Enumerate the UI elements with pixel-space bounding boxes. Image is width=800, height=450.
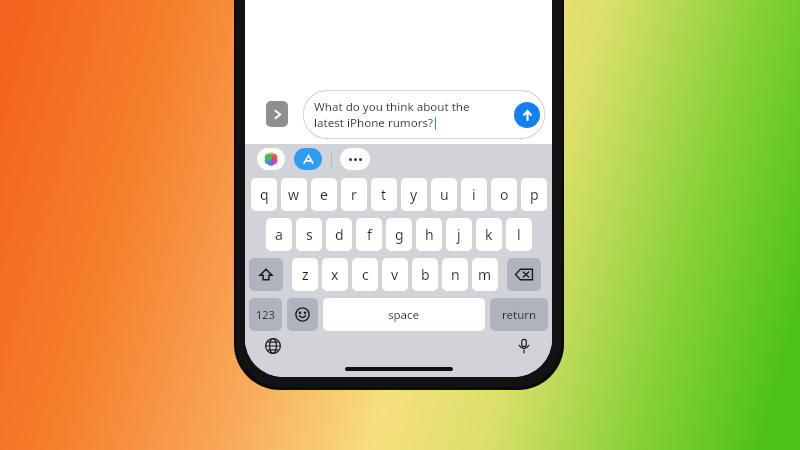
- button[interactable]: l: [506, 218, 532, 251]
- staticText: m: [478, 265, 492, 284]
- button[interactable]: e: [311, 178, 337, 211]
- button[interactable]: k: [476, 218, 502, 251]
- button[interactable]: i: [461, 178, 487, 211]
- button[interactable]: 123: [249, 298, 282, 331]
- staticText: c: [362, 265, 369, 284]
- button[interactable]: n: [442, 258, 468, 291]
- button[interactable]: r: [341, 178, 367, 211]
- button[interactable]: h: [416, 218, 442, 251]
- button[interactable]: f: [356, 218, 382, 251]
- button[interactable]: Shift: [249, 258, 283, 291]
- staticText: space: [388, 307, 420, 323]
- staticText: l: [517, 225, 521, 244]
- button[interactable]: t: [371, 178, 397, 211]
- button[interactable]: Change keyboard: [261, 334, 285, 358]
- staticText: k: [485, 225, 493, 244]
- button[interactable]: Dictate: [512, 334, 536, 358]
- button[interactable]: g: [386, 218, 412, 251]
- staticText: d: [335, 225, 344, 244]
- button[interactable]: a: [266, 218, 292, 251]
- button[interactable]: c: [352, 258, 378, 291]
- staticText: w: [288, 185, 300, 204]
- button[interactable]: y: [401, 178, 427, 211]
- button[interactable]: Delete: [507, 258, 541, 291]
- button[interactable]: s: [296, 218, 322, 251]
- staticText: y: [410, 185, 418, 204]
- staticText: latest iPhone rumors?: [314, 115, 434, 131]
- button[interactable]: App Store: [294, 148, 322, 170]
- button[interactable]: z: [292, 258, 318, 291]
- button[interactable]: d: [326, 218, 352, 251]
- staticText: u: [440, 185, 449, 204]
- button[interactable]: b: [412, 258, 438, 291]
- staticText: i: [472, 185, 476, 204]
- button[interactable]: x: [322, 258, 348, 291]
- staticText: 123: [256, 307, 275, 322]
- button[interactable]: Photos: [257, 148, 285, 170]
- staticText: What do you think about the: [314, 99, 470, 115]
- button[interactable]: j: [446, 218, 472, 251]
- staticText: o: [500, 185, 509, 204]
- staticText: t: [381, 185, 387, 204]
- staticText: h: [425, 225, 434, 244]
- staticText: return: [502, 307, 537, 323]
- button[interactable]: Expand apps: [266, 101, 288, 127]
- staticText: s: [306, 225, 313, 244]
- staticText: z: [302, 265, 309, 284]
- button[interactable]: u: [431, 178, 457, 211]
- button[interactable]: o: [491, 178, 517, 211]
- staticText: f: [367, 225, 372, 244]
- button[interactable]: What do you think about the: [303, 90, 545, 139]
- staticText: r: [351, 185, 357, 204]
- staticText: p: [530, 185, 539, 204]
- staticText: v: [391, 265, 399, 284]
- button[interactable]: q: [251, 178, 277, 211]
- staticText: x: [331, 265, 339, 284]
- staticText: j: [457, 225, 461, 244]
- button[interactable]: w: [281, 178, 307, 211]
- button[interactable]: Emoji: [287, 298, 318, 331]
- staticText: g: [395, 225, 404, 244]
- staticText: q: [260, 185, 269, 204]
- staticText: e: [320, 185, 328, 204]
- button[interactable]: Send: [514, 102, 540, 128]
- button[interactable]: return: [490, 298, 548, 331]
- button[interactable]: space: [323, 298, 485, 331]
- button[interactable]: m: [472, 258, 498, 291]
- staticText: b: [421, 265, 430, 284]
- staticText: a: [275, 225, 283, 244]
- button[interactable]: More apps: [340, 148, 370, 170]
- button[interactable]: v: [382, 258, 408, 291]
- staticText: n: [451, 265, 460, 284]
- button[interactable]: p: [521, 178, 547, 211]
